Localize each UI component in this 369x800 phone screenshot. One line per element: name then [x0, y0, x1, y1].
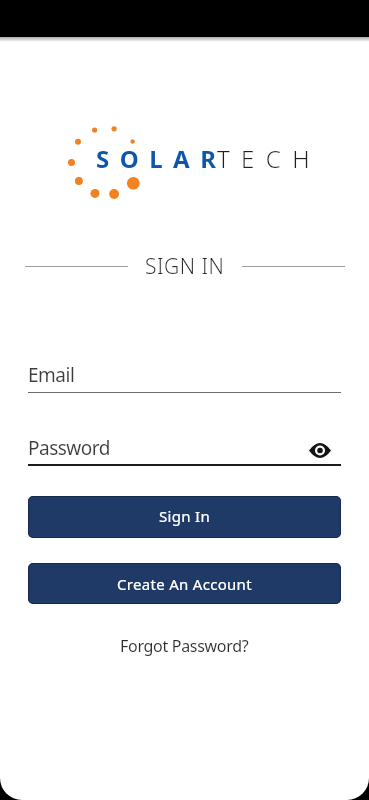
staticText: TECH: [217, 142, 321, 175]
staticText: Password: [28, 435, 110, 461]
staticText: Email: [28, 362, 75, 388]
staticText: Create An Account: [117, 574, 252, 594]
button[interactable]: Password: [28, 435, 341, 466]
staticText: SOLAR: [96, 142, 227, 175]
staticText: Sign In: [159, 506, 210, 526]
staticText: Forgot Password?: [120, 635, 249, 657]
button[interactable]: Forgot Password?: [116, 631, 253, 661]
button[interactable]: Create An Account: [28, 563, 341, 604]
button[interactable]: Sign In: [28, 496, 341, 538]
staticText: SIGN IN: [145, 252, 225, 281]
button[interactable]: [309, 443, 331, 458]
button[interactable]: Email: [28, 362, 341, 393]
